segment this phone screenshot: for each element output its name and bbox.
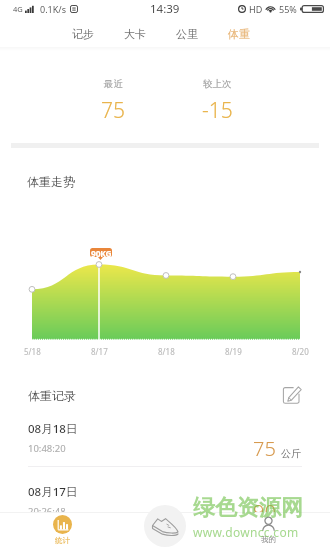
button[interactable]: 统计 xyxy=(42,515,82,548)
staticText: 08月18日 xyxy=(28,421,78,437)
staticText: www.downcc.com xyxy=(193,524,299,540)
staticText: 8/19 xyxy=(225,346,242,357)
staticText: 体重走势 xyxy=(27,174,75,189)
staticText: 5/18 xyxy=(24,346,41,357)
staticText: 10:48:20 xyxy=(28,442,66,455)
button[interactable]: 我的 xyxy=(248,516,288,548)
button[interactable]: 08月18日 xyxy=(0,418,330,466)
button[interactable]: 公里 xyxy=(166,20,208,47)
staticText: 8/20 xyxy=(292,346,309,357)
staticText: 8/17 xyxy=(91,346,108,357)
staticText: 最近 xyxy=(104,78,123,90)
staticText: 绿色资源网 xyxy=(193,494,303,522)
staticText: 75 xyxy=(253,435,276,462)
staticText: 体重记录 xyxy=(28,388,76,403)
staticText: -15 xyxy=(202,96,233,125)
staticText: 较上次 xyxy=(203,78,232,90)
button[interactable]: 较上次 xyxy=(182,78,252,130)
staticText: 20:26:48 xyxy=(28,505,66,518)
staticText: HD xyxy=(249,3,263,15)
staticText: 8/18 xyxy=(158,346,175,357)
staticText: 大卡 xyxy=(124,27,146,41)
staticText: 0.1K/s xyxy=(40,3,66,15)
staticText: 公里 xyxy=(176,27,198,41)
staticText: 我的 xyxy=(261,535,276,544)
staticText: 4G xyxy=(13,4,23,14)
staticText: 统计 xyxy=(55,536,70,545)
button[interactable]: 最近 xyxy=(78,78,148,130)
staticText: 90KG xyxy=(91,248,112,257)
staticText: 记步 xyxy=(72,27,94,41)
button[interactable]: 大卡 xyxy=(114,20,156,47)
button[interactable]: 体重 xyxy=(218,20,260,47)
staticText: 公斤 xyxy=(281,447,301,460)
staticText: 08月17日 xyxy=(28,484,78,500)
button[interactable]: 开始运动 xyxy=(144,505,186,547)
staticText: 90 xyxy=(253,498,276,525)
staticText: 55% xyxy=(279,3,297,15)
staticText: 75 xyxy=(101,96,125,125)
button[interactable]: 08月17日 xyxy=(0,481,330,529)
staticText: 14:39 xyxy=(150,1,180,17)
staticText: 体重 xyxy=(228,27,250,41)
button[interactable]: 编辑记录 xyxy=(281,384,303,406)
button[interactable]: 记步 xyxy=(62,20,104,47)
staticText: 公斤 xyxy=(281,510,301,523)
